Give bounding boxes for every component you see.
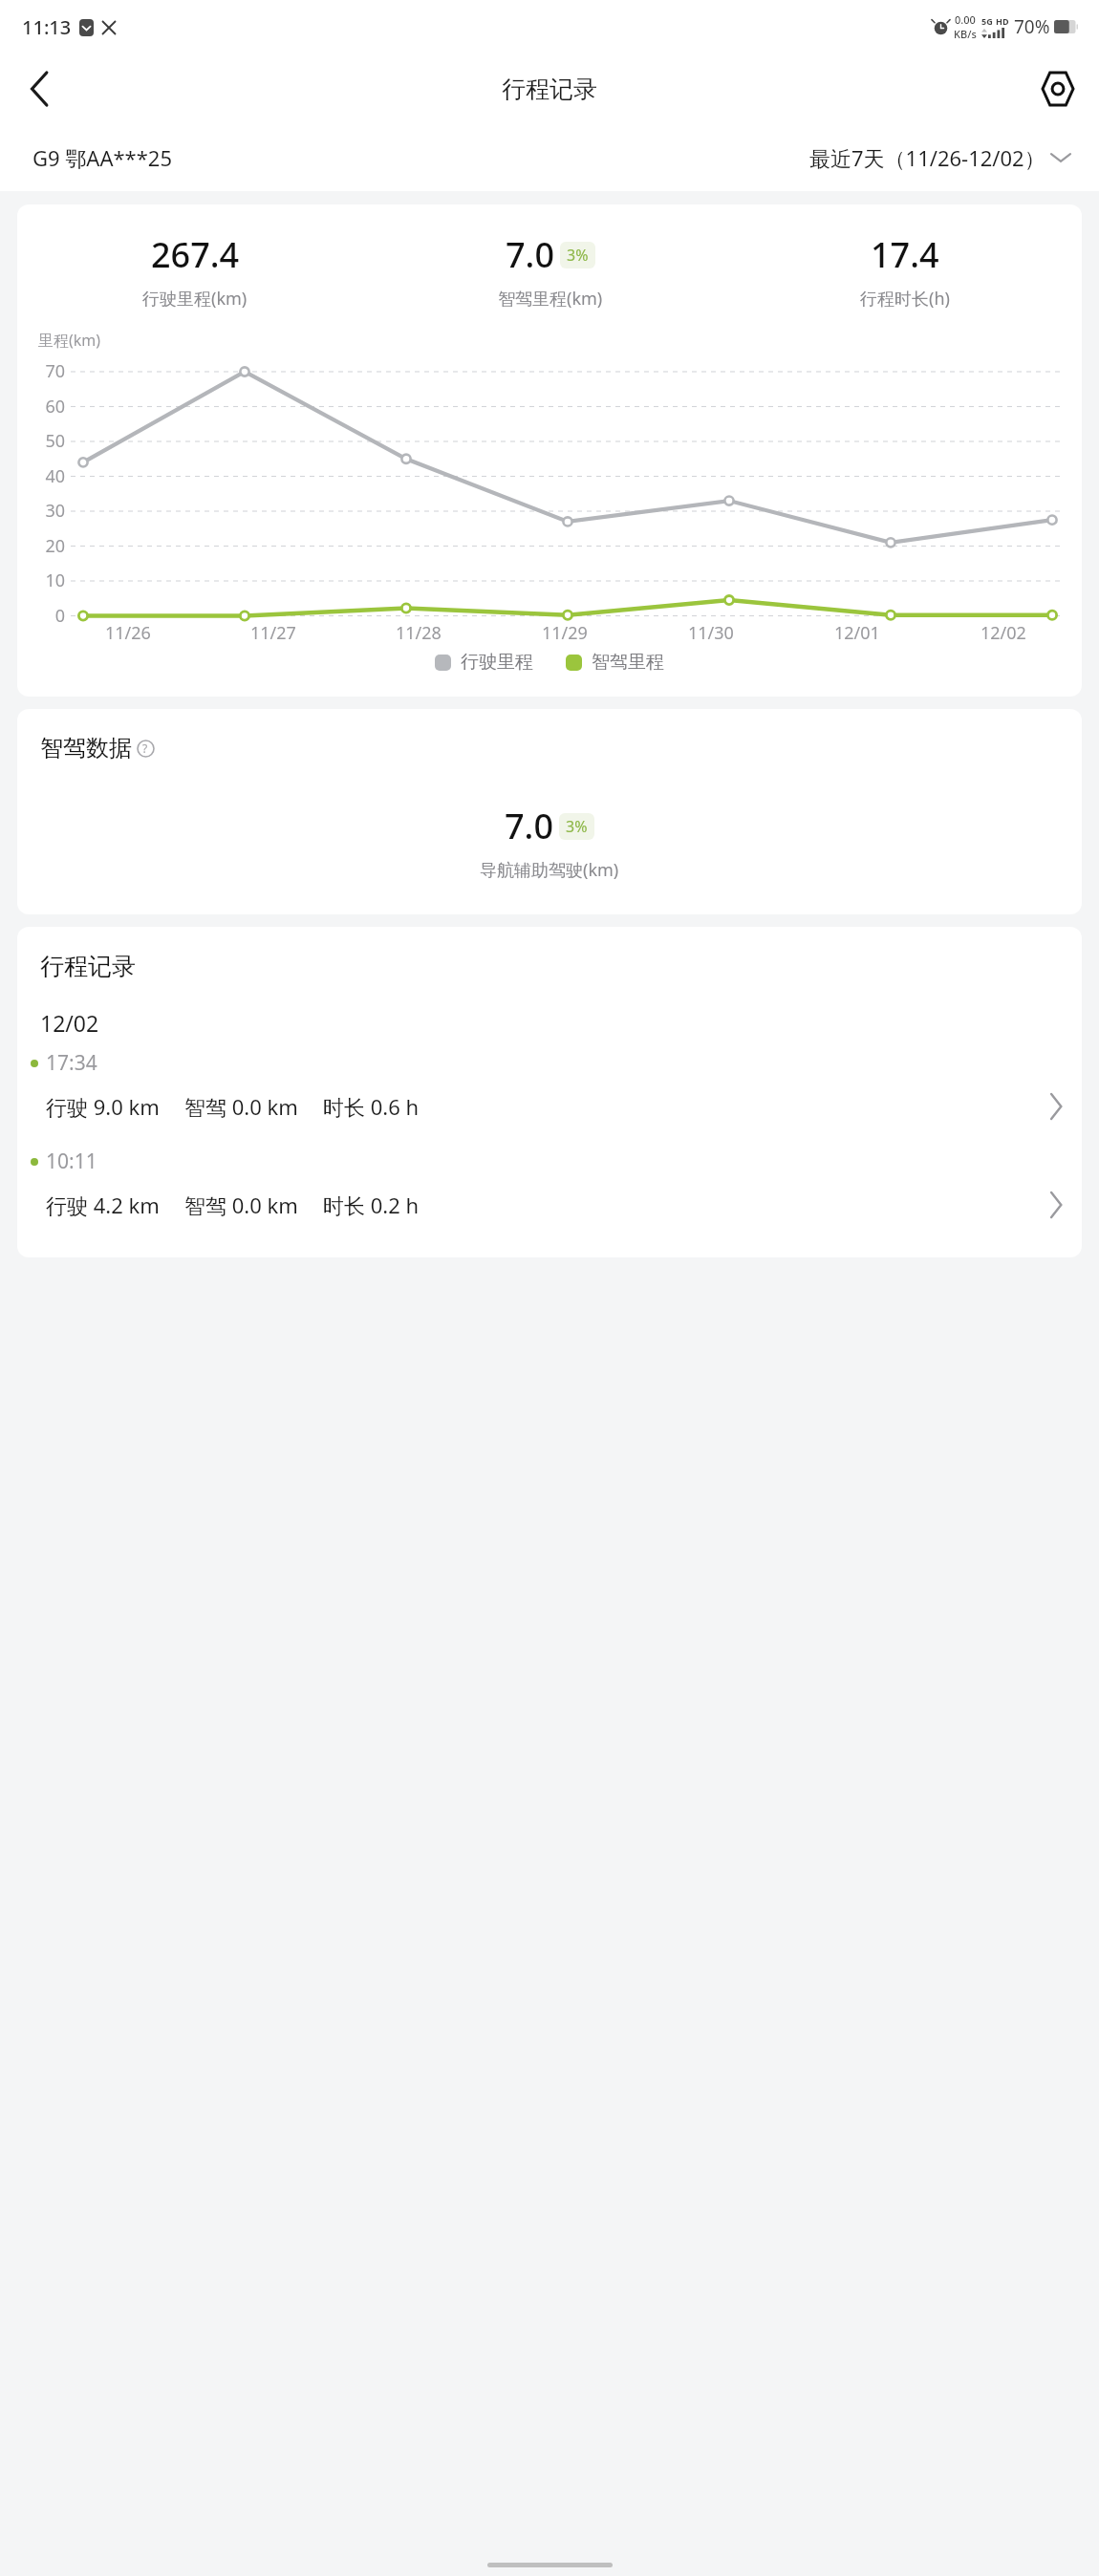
staticText: 30	[32, 499, 65, 523]
staticText: 3%	[567, 245, 589, 266]
staticText: 11/26	[105, 621, 151, 645]
button[interactable]: Help	[135, 738, 156, 759]
button[interactable]: 17.4	[727, 231, 1082, 311]
staticText: 40	[32, 464, 65, 488]
staticText: 5G	[981, 15, 993, 27]
staticText: G9 鄂AA***25	[32, 143, 172, 172]
staticText: 267.4	[151, 231, 240, 278]
staticText: 行驶 4.2 km	[46, 1191, 160, 1219]
staticText: 时长 0.6 h	[323, 1092, 420, 1121]
staticText: 3%	[566, 816, 588, 837]
staticText: 智驾 0.0 km	[184, 1191, 298, 1219]
staticText: 0.00	[955, 12, 976, 27]
staticText: 10:11	[46, 1148, 97, 1175]
staticText: 12/02	[40, 1008, 99, 1038]
staticText: 70%	[1014, 14, 1050, 39]
staticText: 行驶里程(km)	[142, 287, 248, 311]
staticText: 70	[32, 359, 65, 383]
staticText: 11/30	[688, 621, 734, 645]
button[interactable]: G9 鄂AA***25	[32, 143, 172, 172]
staticText: HD	[996, 15, 1009, 27]
staticText: 行程时长(h)	[860, 287, 950, 311]
staticText: 11/28	[396, 621, 442, 645]
staticText: 17:34	[46, 1049, 97, 1077]
staticText: 0	[32, 604, 65, 628]
staticText: 60	[32, 395, 65, 419]
staticText: ?	[142, 741, 148, 756]
staticText: 11/29	[542, 621, 588, 645]
staticText: 行驶里程	[461, 651, 533, 674]
staticText: 10	[32, 569, 65, 592]
button[interactable]: Settings	[1032, 63, 1084, 115]
staticText: 7.0	[505, 803, 553, 849]
staticText: 里程(km)	[38, 330, 101, 351]
staticText: 11:13	[22, 14, 72, 40]
staticText: 12/02	[980, 621, 1026, 645]
staticText: 行驶 9.0 km	[46, 1092, 160, 1121]
staticText: 智驾里程(km)	[498, 287, 603, 311]
staticText: 导航辅助驾驶(km)	[480, 858, 619, 882]
staticText: 智驾 0.0 km	[184, 1092, 298, 1121]
staticText: 智驾数据	[40, 734, 132, 762]
staticText: 时长 0.2 h	[323, 1191, 420, 1219]
staticText: 智驾里程	[592, 651, 664, 674]
staticText: 17.4	[871, 231, 939, 278]
staticText: 行程记录	[40, 952, 136, 981]
staticText: 7.0	[506, 231, 554, 278]
button[interactable]: 10:11	[17, 1148, 1082, 1219]
staticText: 12/01	[834, 621, 880, 645]
button[interactable]: 17:34	[17, 1049, 1082, 1121]
staticText: 最近7天（11/26-12/02）	[809, 143, 1045, 172]
staticText: KB/s	[954, 27, 977, 41]
staticText: 20	[32, 534, 65, 558]
button[interactable]: 7.0	[373, 231, 727, 311]
button[interactable]: 最近7天（11/26-12/02）	[809, 143, 1070, 172]
staticText: 行程记录	[502, 75, 597, 104]
staticText: 11/27	[250, 621, 296, 645]
staticText: 50	[32, 429, 65, 453]
button[interactable]: 267.4	[17, 231, 373, 311]
button[interactable]: Back	[13, 63, 65, 115]
